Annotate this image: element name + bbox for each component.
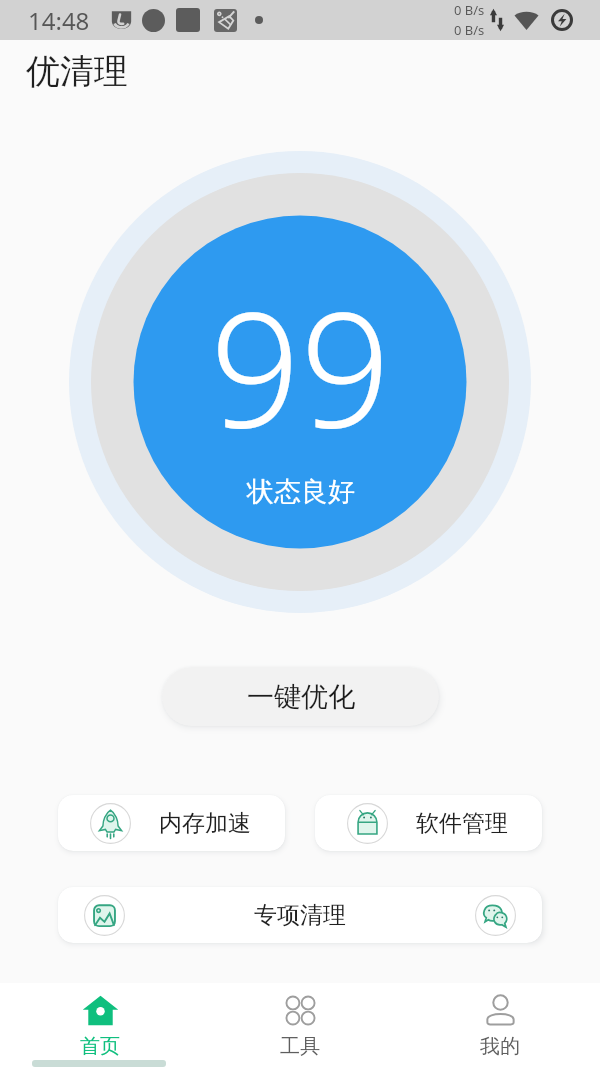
button[interactable]: 微信专清 [475, 895, 516, 936]
staticText: 优清理 [26, 50, 128, 93]
button[interactable]: 一键优化 [162, 667, 439, 726]
staticText: 工具 [280, 1034, 320, 1059]
staticText: 软件管理 [416, 809, 508, 838]
button[interactable]: 我的 [400, 983, 600, 1067]
staticText: 我的 [480, 1034, 520, 1059]
staticText: 一键优化 [247, 680, 355, 714]
staticText: 99 [210, 258, 391, 473]
staticText: 0 B/s [454, 21, 485, 39]
button[interactable]: 工具 [200, 983, 400, 1067]
staticText: 状态良好 [247, 475, 355, 509]
staticText: 0 B/s [454, 1, 485, 19]
button[interactable]: 首页 [0, 983, 200, 1067]
staticText: 专项清理 [254, 901, 346, 930]
staticText: 14:48 [28, 4, 90, 37]
button[interactable]: 专项清理 [58, 887, 542, 943]
button[interactable]: 软件管理 [315, 795, 542, 851]
button[interactable]: 内存加速 [58, 795, 285, 851]
staticText: 首页 [80, 1034, 120, 1059]
staticText: 内存加速 [159, 809, 251, 838]
